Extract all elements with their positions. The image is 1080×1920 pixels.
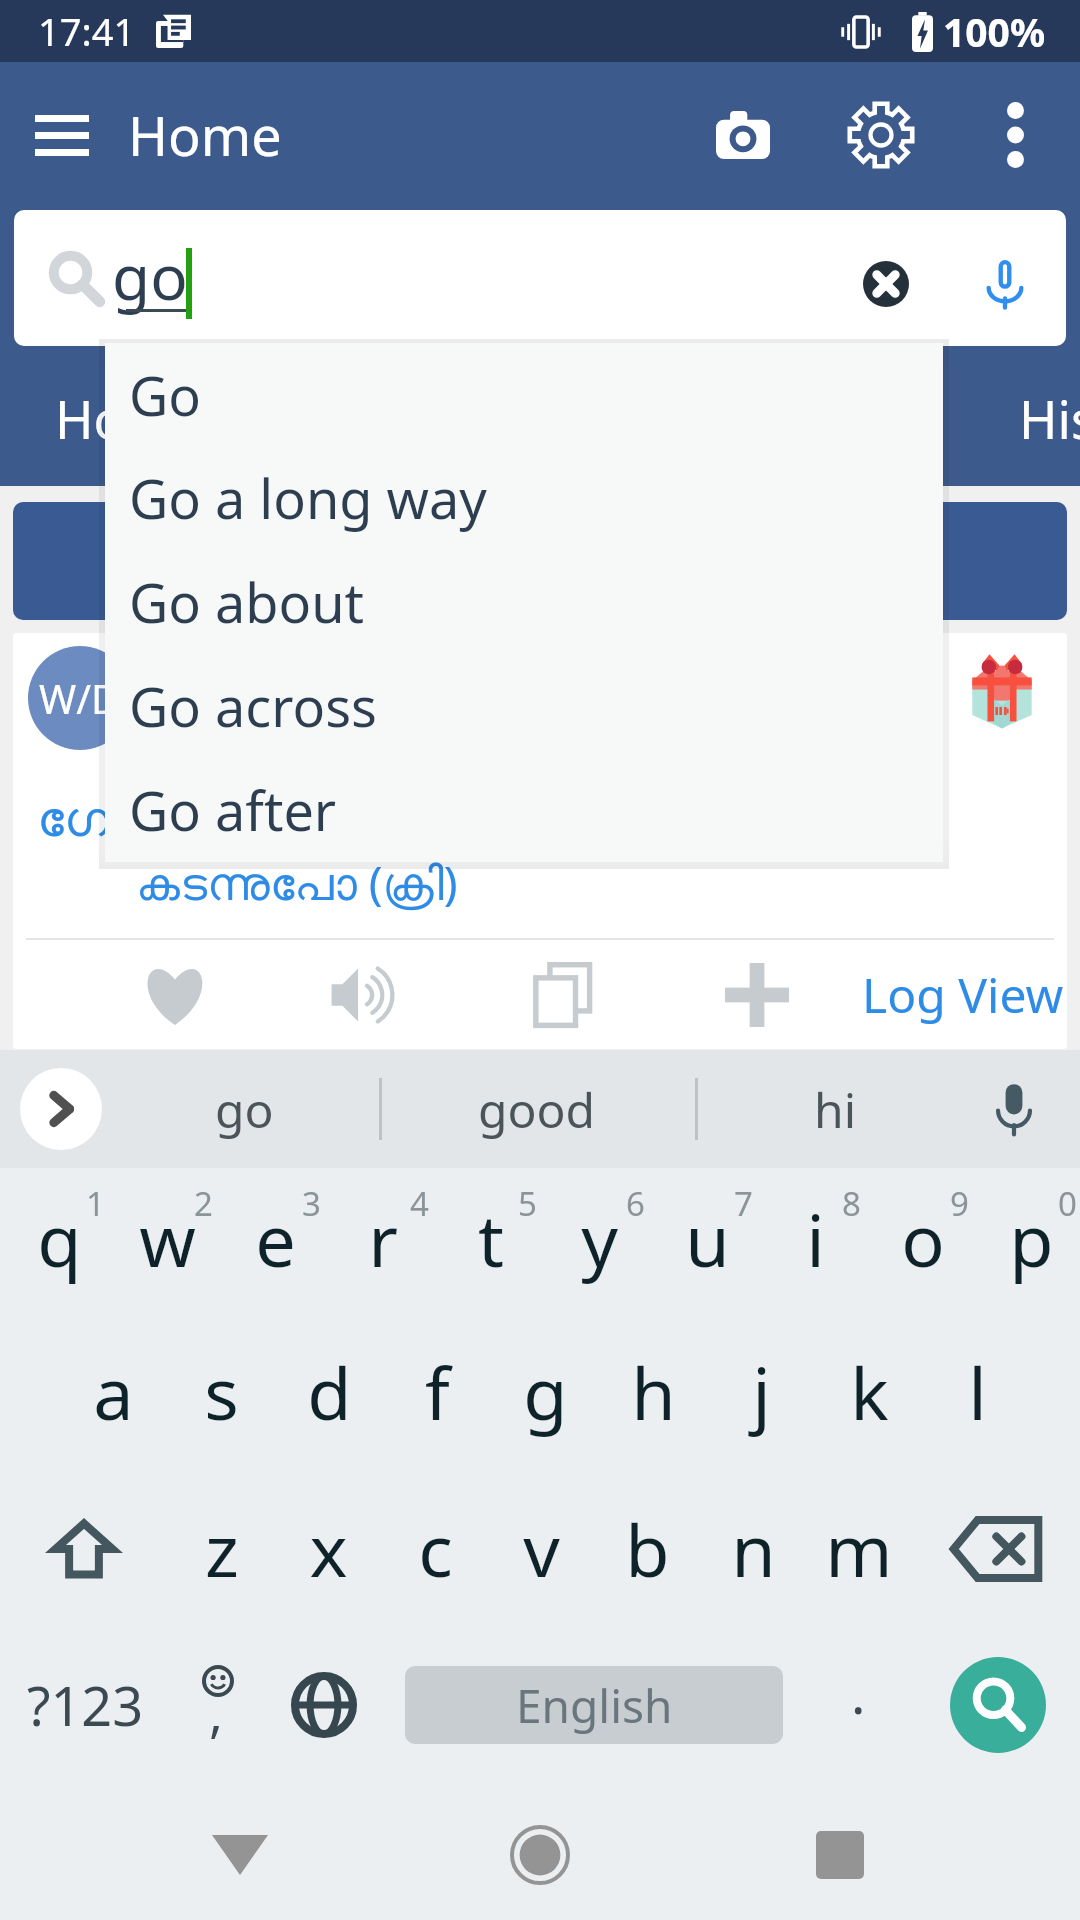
button[interactable]: Open navigation menu — [14, 87, 110, 183]
staticText: m — [825, 1500, 893, 1598]
button[interactable]: Voice input — [974, 1069, 1054, 1149]
button[interactable]: English — [405, 1666, 783, 1744]
button[interactable]: s — [167, 1334, 275, 1450]
button[interactable]: i — [756, 1168, 864, 1344]
button[interactable]: Speak — [272, 940, 466, 1049]
staticText: . — [851, 1656, 866, 1730]
button[interactable]: t — [432, 1168, 540, 1344]
button[interactable]: Clear query — [826, 210, 946, 346]
button[interactable]: go — [14, 210, 1066, 346]
staticText: 3 — [302, 1181, 321, 1226]
button[interactable]: q — [0, 1168, 108, 1344]
button[interactable]: good — [379, 1050, 695, 1168]
staticText: 9 — [950, 1181, 969, 1226]
button[interactable]: c — [382, 1461, 488, 1637]
button[interactable]: Go across — [105, 654, 943, 758]
button[interactable]: Advertisement — [969, 651, 1035, 731]
button[interactable]: f — [383, 1334, 491, 1450]
button[interactable]: hi — [695, 1050, 975, 1168]
button[interactable]: Copy — [467, 940, 661, 1049]
button[interactable]: Change language — [266, 1636, 382, 1774]
staticText: u — [685, 1190, 730, 1288]
button[interactable]: Emoji and comma — [170, 1636, 266, 1774]
button[interactable]: a — [59, 1334, 167, 1450]
button[interactable]: Search — [916, 1636, 1080, 1774]
staticText: q — [37, 1190, 82, 1288]
button[interactable]: o — [864, 1168, 972, 1344]
button[interactable]: Favourite — [78, 940, 272, 1049]
button[interactable]: Recent apps — [750, 1795, 930, 1915]
staticText: Go after — [129, 773, 337, 847]
button[interactable]: l — [923, 1334, 1031, 1450]
staticText: f — [425, 1343, 450, 1441]
button[interactable]: m — [806, 1461, 912, 1637]
button[interactable]: h — [599, 1334, 707, 1450]
staticText: W/D — [39, 671, 121, 725]
button[interactable]: g — [491, 1334, 599, 1450]
button[interactable]: Expand toolbar — [20, 1068, 102, 1150]
staticText: Home — [128, 98, 282, 172]
staticText: 1 — [86, 1181, 105, 1226]
button[interactable]: n — [700, 1461, 806, 1637]
staticText: t — [478, 1190, 504, 1288]
staticText: 7 — [734, 1181, 753, 1226]
button[interactable]: j — [707, 1334, 815, 1450]
button[interactable]: b — [594, 1461, 700, 1637]
button[interactable]: Go after — [105, 758, 943, 862]
button[interactable]: w — [108, 1168, 216, 1344]
staticText: n — [731, 1500, 776, 1598]
button[interactable]: y — [540, 1168, 648, 1344]
staticText: j — [752, 1343, 771, 1441]
staticText: 6 — [626, 1181, 645, 1226]
staticText: b — [625, 1500, 670, 1598]
button[interactable]: Log View — [834, 940, 1067, 1049]
button[interactable]: ?123 — [0, 1636, 170, 1774]
staticText: g — [523, 1343, 568, 1441]
button[interactable] — [13, 502, 1067, 620]
button[interactable]: Home — [0, 350, 373, 486]
button[interactable]: More options — [945, 62, 1080, 208]
button[interactable]: Back — [150, 1795, 330, 1915]
staticText: l — [968, 1343, 987, 1441]
button[interactable]: p — [972, 1168, 1080, 1344]
staticText: കടന്നുപോ (ക്രി) — [136, 851, 458, 914]
button[interactable]: z — [168, 1461, 275, 1637]
staticText: History — [1019, 383, 1080, 454]
button[interactable]: Go a long way — [105, 446, 943, 550]
staticText: Home — [55, 383, 203, 454]
button[interactable]: Add — [660, 940, 854, 1049]
staticText: hi — [814, 1077, 857, 1142]
button[interactable]: x — [275, 1461, 382, 1637]
button[interactable]: v — [488, 1461, 594, 1637]
button[interactable]: d — [275, 1334, 383, 1450]
button[interactable]: W/D — [28, 646, 132, 750]
button[interactable]: Settings — [811, 62, 951, 208]
staticText: h — [631, 1343, 676, 1441]
button[interactable]: . — [800, 1636, 916, 1774]
button[interactable]: Go — [105, 343, 943, 446]
staticText: i — [806, 1190, 825, 1288]
staticText: Go a long way — [129, 461, 487, 535]
staticText: c — [418, 1500, 453, 1598]
button[interactable]: Voice search — [940, 210, 1066, 346]
button[interactable]: u — [648, 1168, 756, 1344]
button[interactable]: go — [110, 1050, 379, 1168]
staticText: w — [139, 1190, 196, 1288]
staticText: e — [255, 1190, 296, 1288]
button[interactable]: k — [815, 1334, 923, 1450]
button[interactable]: Shift — [0, 1461, 168, 1637]
button[interactable]: Go about — [105, 550, 943, 654]
button[interactable]: e — [216, 1168, 324, 1344]
button[interactable]: Home — [450, 1795, 630, 1915]
staticText: d — [307, 1343, 352, 1441]
staticText: English — [516, 1674, 673, 1737]
button[interactable]: Backspace — [912, 1461, 1080, 1637]
button[interactable]: r — [324, 1168, 432, 1344]
button[interactable]: Camera — [673, 62, 813, 208]
staticText: ഗോ പോകുക — [37, 783, 337, 851]
button[interactable]: History — [862, 350, 1080, 486]
staticText: , — [209, 1676, 223, 1747]
staticText: 0 — [1058, 1181, 1077, 1226]
